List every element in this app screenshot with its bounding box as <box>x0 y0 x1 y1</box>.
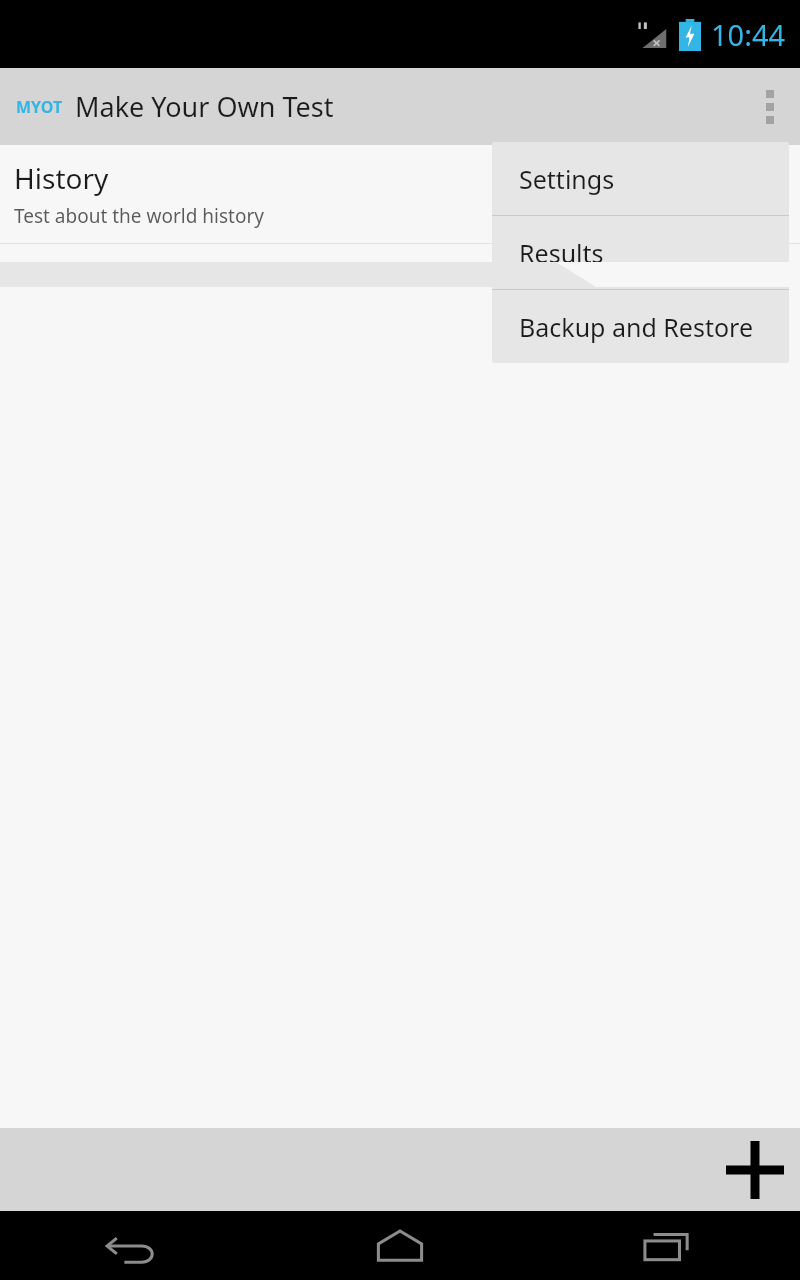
button[interactable]: Results <box>492 216 789 289</box>
staticText: 10:44 <box>711 15 786 54</box>
button[interactable]: Back <box>0 1211 266 1280</box>
button[interactable]: Home <box>266 1211 533 1280</box>
staticText: History <box>14 159 109 197</box>
button[interactable]: Add test <box>710 1128 800 1211</box>
staticText: MYOT <box>16 96 63 118</box>
button[interactable]: Settings <box>492 142 789 215</box>
button[interactable]: Backup and Restore <box>492 290 789 363</box>
staticText: Backup and Restore <box>519 310 754 344</box>
staticText: Test about the world history <box>14 203 264 229</box>
button[interactable]: History <box>0 145 800 244</box>
staticText: Settings <box>519 162 615 196</box>
staticText: Results <box>519 236 604 270</box>
staticText: Make Your Own Test <box>75 88 334 125</box>
button[interactable]: More options <box>740 68 800 145</box>
button[interactable]: Recent apps <box>533 1211 800 1280</box>
